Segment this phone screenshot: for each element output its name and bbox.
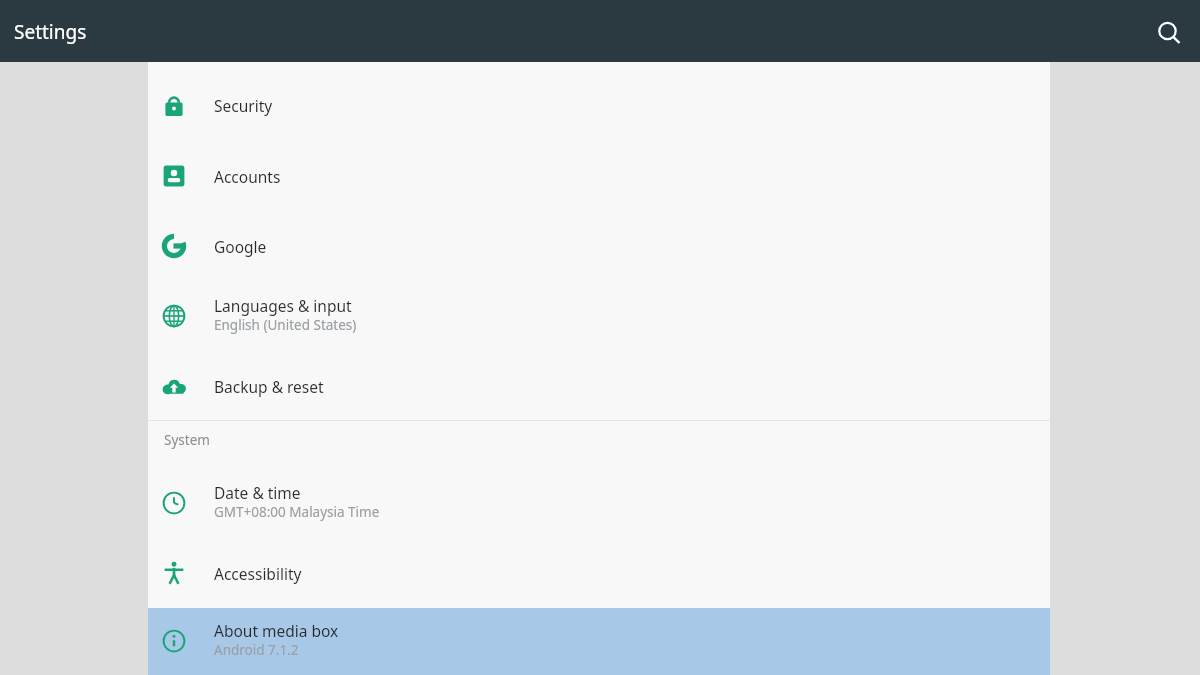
staticText: Date & time xyxy=(214,482,301,503)
staticText: System xyxy=(164,431,210,449)
staticText: Google xyxy=(214,236,267,257)
button[interactable] xyxy=(148,141,1050,211)
staticText: English (United States) xyxy=(214,316,357,334)
button[interactable] xyxy=(148,211,1050,281)
staticText: Languages & input xyxy=(214,295,352,316)
staticText: Security xyxy=(214,95,273,116)
staticText: GMT+08:00 Malaysia Time xyxy=(214,503,380,521)
button[interactable] xyxy=(148,281,1050,351)
button[interactable] xyxy=(148,608,1050,675)
staticText: Settings xyxy=(14,19,87,45)
staticText: About media box xyxy=(214,620,339,641)
staticText: Backup & reset xyxy=(214,376,324,397)
staticText: Accounts xyxy=(214,166,281,187)
staticText: Accessibility xyxy=(214,563,302,584)
button[interactable] xyxy=(148,468,1050,538)
button[interactable] xyxy=(148,538,1050,608)
button[interactable] xyxy=(148,70,1050,140)
staticText: Android 7.1.2 xyxy=(214,641,299,659)
button[interactable]: Search xyxy=(1140,3,1196,59)
button[interactable] xyxy=(148,351,1050,421)
